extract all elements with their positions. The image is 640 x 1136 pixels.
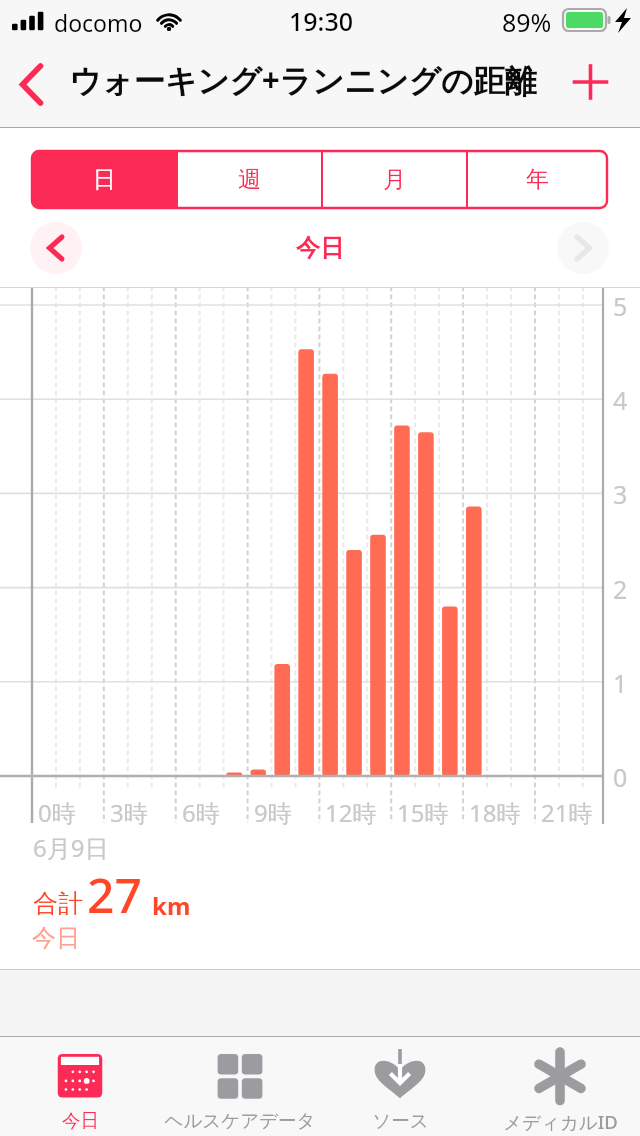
button[interactable]: 日 xyxy=(32,151,176,208)
button[interactable]: 週 xyxy=(178,151,321,208)
staticText: 15時 xyxy=(397,796,449,829)
button[interactable]: 年 xyxy=(468,151,607,208)
staticText: 3時 xyxy=(110,796,148,829)
button[interactable]: Previous day xyxy=(30,222,82,274)
staticText: docomo xyxy=(54,7,143,38)
button[interactable]: Add xyxy=(558,44,624,128)
staticText: 89% xyxy=(502,5,552,39)
button[interactable]: ヘルスケアデータ xyxy=(160,1037,320,1136)
staticText: メディカルID xyxy=(503,1109,618,1134)
staticText: 21時 xyxy=(541,796,593,829)
staticText: 0 xyxy=(613,760,628,794)
staticText: ソース xyxy=(372,1109,429,1132)
staticText: 今日 xyxy=(32,923,80,953)
staticText: 19:30 xyxy=(289,4,354,38)
staticText: 9時 xyxy=(254,796,292,829)
staticText: 週 xyxy=(238,165,261,194)
staticText: 合計 xyxy=(33,888,83,919)
staticText: 年 xyxy=(526,165,549,194)
staticText: 今日 xyxy=(62,1109,99,1132)
staticText: km xyxy=(152,889,191,922)
staticText: 1 xyxy=(613,666,628,700)
staticText: 6月9日 xyxy=(33,831,109,864)
staticText: 今日 xyxy=(296,233,344,263)
button[interactable]: Next day xyxy=(557,222,609,274)
staticText: 3 xyxy=(613,477,628,511)
staticText: ヘルスケアデータ xyxy=(164,1109,316,1132)
staticText: 5 xyxy=(613,289,628,323)
staticText: 12時 xyxy=(325,796,377,829)
staticText: 0時 xyxy=(38,796,76,829)
staticText: 27 xyxy=(87,862,142,927)
button[interactable]: Back xyxy=(0,44,68,128)
staticText: 4 xyxy=(613,383,628,417)
button[interactable]: ソース xyxy=(320,1037,480,1136)
staticText: ウォーキング+ランニングの距離 xyxy=(69,58,537,101)
staticText: 日 xyxy=(93,165,116,194)
button[interactable]: 今日 xyxy=(0,1037,160,1136)
button[interactable]: 月 xyxy=(323,151,466,208)
staticText: 2 xyxy=(613,572,628,606)
button[interactable]: メディカルID xyxy=(480,1037,640,1136)
staticText: 18時 xyxy=(469,796,521,829)
staticText: 6時 xyxy=(182,796,220,829)
staticText: 月 xyxy=(383,165,406,194)
